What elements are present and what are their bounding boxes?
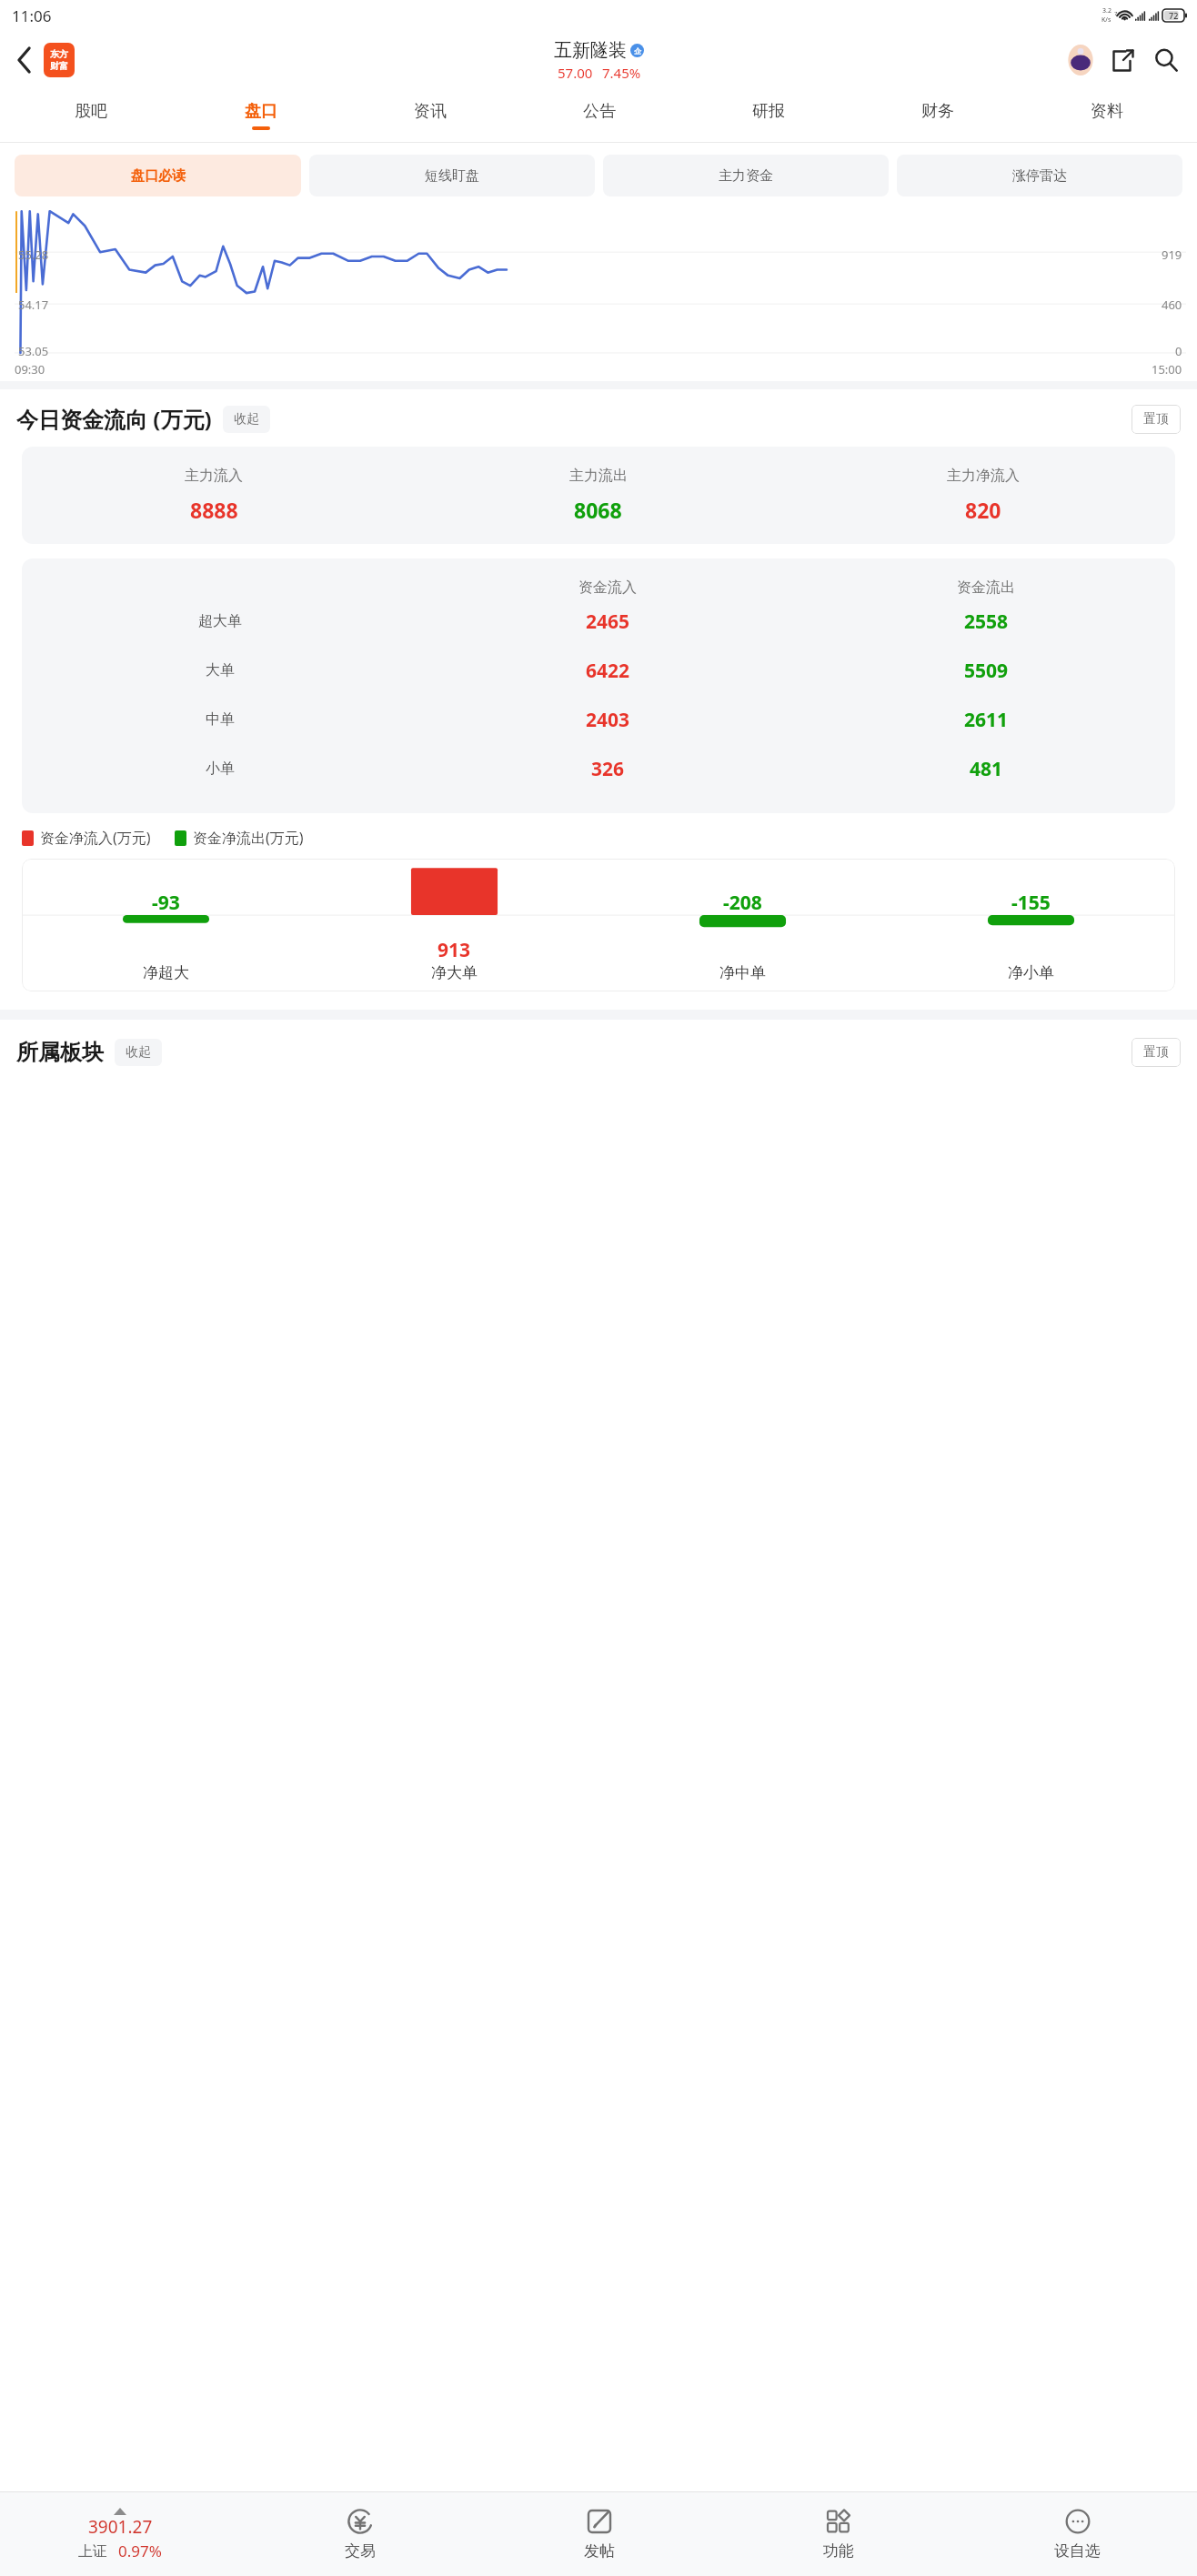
staticText: 3.2 [1102, 6, 1111, 15]
staticText: 资金净流入(万元) [40, 828, 151, 848]
staticText: 置顶 [1143, 1044, 1169, 1061]
staticText: -208 [723, 890, 762, 916]
staticText: 460 [1162, 297, 1182, 313]
staticText: 小单 [206, 760, 235, 778]
button[interactable]: 研报 [684, 89, 853, 142]
staticText: 09:30 [15, 361, 45, 377]
staticText: 资金流出 [957, 579, 1015, 597]
button[interactable]: 收起 [223, 406, 270, 433]
button[interactable]: 主力流入 [22, 447, 1175, 544]
staticText: 设自选 [1054, 2541, 1101, 2561]
staticText: 上证 [78, 2542, 107, 2561]
staticText: 净超大 [143, 963, 189, 982]
staticText: 主力流入 [185, 467, 243, 485]
staticText: 6422 [586, 658, 630, 684]
button[interactable]: 发帖 [479, 2492, 719, 2576]
staticText: 资讯 [414, 101, 447, 122]
staticText: 超大单 [198, 612, 242, 630]
staticText: 净中单 [719, 963, 766, 982]
button[interactable]: 置顶 [1132, 405, 1181, 434]
button[interactable]: 盘口必读 [15, 155, 301, 196]
staticText: 今日资金流向 (万元) [16, 404, 212, 434]
staticText: 7.45% [602, 64, 641, 82]
staticText: 财务 [921, 101, 954, 122]
button[interactable]: 东方财富 [44, 43, 75, 77]
button[interactable]: 财务 [853, 89, 1022, 142]
button[interactable]: 短线盯盘 [309, 155, 595, 196]
staticText: 交易 [345, 2541, 376, 2561]
staticText: 资金流入 [578, 579, 637, 597]
button[interactable]: 功能 [719, 2492, 958, 2576]
staticText: 涨停雷达 [1012, 167, 1067, 185]
staticText: 盘口 [245, 101, 277, 122]
staticText: 72 [1169, 10, 1179, 21]
staticText: K/s [1101, 15, 1111, 25]
button[interactable]: 股吧 [5, 89, 176, 142]
button[interactable]: 小单 [22, 744, 1175, 793]
button[interactable]: 中单 [22, 695, 1175, 744]
button[interactable]: 涨停雷达 [897, 155, 1182, 196]
button[interactable]: 设自选 [958, 2492, 1197, 2576]
button[interactable]: 主力资金 [603, 155, 889, 196]
staticText: 55.28 [18, 247, 49, 263]
staticText: 置顶 [1143, 411, 1169, 428]
button[interactable]: 交易 [240, 2492, 479, 2576]
staticText: 8068 [574, 496, 622, 524]
staticText: 2611 [964, 707, 1009, 733]
staticText: 5509 [964, 658, 1009, 684]
staticText: 短线盯盘 [425, 167, 479, 185]
staticText: 净大单 [431, 963, 478, 982]
staticText: 326 [591, 756, 625, 782]
staticText: 913 [438, 937, 471, 963]
staticText: 8888 [190, 496, 238, 524]
button[interactable]: 大单 [22, 646, 1175, 695]
staticText: 功能 [823, 2541, 854, 2561]
button[interactable]: 公告 [515, 89, 684, 142]
staticText: 企 [634, 46, 641, 55]
staticText: 资金净流出(万元) [193, 828, 304, 848]
button[interactable]: 搜索 [1144, 38, 1188, 82]
button[interactable]: 资讯 [346, 89, 515, 142]
staticText: 主力净流入 [947, 467, 1020, 485]
staticText: 481 [970, 756, 1003, 782]
staticText: 净小单 [1008, 963, 1054, 982]
button[interactable]: 盘口 [176, 89, 346, 142]
staticText: 0 [1175, 343, 1182, 359]
staticText: 7 [1114, 10, 1118, 17]
staticText: 2558 [964, 609, 1009, 635]
staticText: 公告 [583, 101, 616, 122]
staticText: 研报 [752, 101, 785, 122]
staticText: 盘口必读 [131, 167, 186, 185]
staticText: 所属板块 [16, 1039, 104, 1066]
button[interactable]: 用户头像 [1061, 40, 1101, 80]
staticText: 财富 [50, 60, 68, 72]
button[interactable]: 返回 [7, 43, 42, 77]
staticText: 股吧 [75, 101, 107, 122]
staticText: 大单 [206, 661, 235, 679]
staticText: 资料 [1091, 101, 1123, 122]
staticText: 57.00 [558, 64, 593, 82]
staticText: 发帖 [584, 2541, 615, 2561]
staticText: -155 [1011, 890, 1051, 916]
staticText: 东方 [50, 48, 68, 60]
button[interactable]: 资料 [1022, 89, 1192, 142]
staticText: 主力流出 [569, 467, 628, 485]
staticText: 0.97% [118, 2541, 162, 2561]
staticText: 收起 [234, 411, 259, 428]
staticText: 2465 [586, 609, 630, 635]
button[interactable]: 3901.27 [0, 2508, 240, 2561]
staticText: 五新隧装 [554, 39, 627, 62]
button[interactable]: 置顶 [1132, 1038, 1181, 1067]
staticText: 2403 [586, 707, 630, 733]
staticText: -93 [152, 890, 180, 916]
staticText: 15:00 [1152, 361, 1182, 377]
button[interactable]: 超大单 [22, 597, 1175, 646]
staticText: 820 [965, 496, 1001, 524]
staticText: 收起 [126, 1044, 151, 1061]
staticText: 919 [1162, 247, 1182, 263]
staticText: 中单 [206, 710, 235, 729]
staticText: 11:06 [12, 5, 52, 26]
staticText: 53.05 [18, 343, 49, 359]
button[interactable]: 收起 [115, 1039, 162, 1066]
button[interactable]: 分享 [1101, 38, 1144, 82]
